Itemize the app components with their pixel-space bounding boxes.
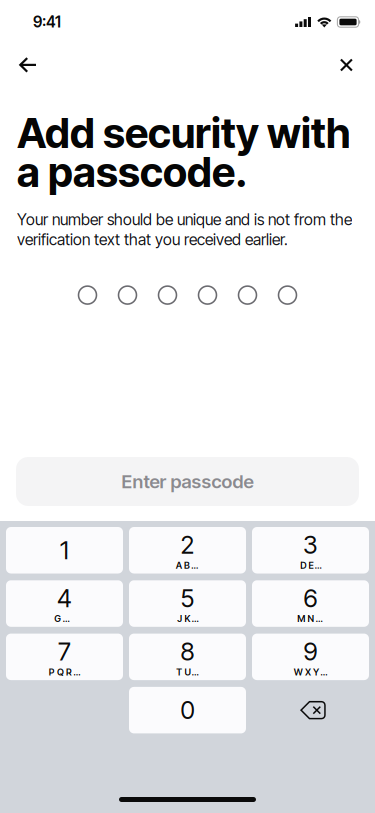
button[interactable]: Back [19,50,63,80]
staticText: 3 [303,530,318,560]
button[interactable]: 6 [252,580,369,627]
staticText: verification text that you received earl… [17,230,288,249]
staticText: PQRS [49,666,80,678]
staticText: 0 [180,695,194,725]
button[interactable]: 7 [6,634,123,680]
button[interactable]: Close [308,50,352,80]
button[interactable]: 2 [129,527,246,573]
staticText: Your number should be unique and is not … [17,210,352,229]
button[interactable]: 5 [129,580,246,627]
button[interactable]: 1 [6,527,123,573]
staticText: ABC [176,560,199,571]
staticText: 8 [180,636,194,666]
staticText: MNO [297,613,324,624]
button[interactable]: 4 [6,580,123,627]
staticText: TUV [176,666,199,678]
button[interactable]: 0 [129,687,246,733]
staticText: 5 [180,583,194,613]
staticText: 6 [303,583,317,613]
button[interactable]: 9 [252,634,369,680]
button[interactable]: 8 [129,634,246,680]
staticText: 7 [58,636,71,666]
staticText: 1 [60,535,69,565]
staticText: GHI [54,613,75,624]
staticText: 9:41 [33,13,61,31]
staticText: WXYZ [294,666,327,678]
staticText: Enter passcode [121,470,253,493]
staticText: JKL [177,613,198,624]
staticText: Add security with [17,108,351,158]
staticText: 4 [57,583,72,613]
button[interactable]: Enter passcode [0,457,375,506]
staticText: a passcode. [17,147,248,197]
button[interactable]: Delete [252,687,369,733]
staticText: 2 [180,530,194,560]
staticText: DEF [300,560,321,571]
button[interactable]: 3 [252,527,369,573]
staticText: 9 [303,636,317,666]
